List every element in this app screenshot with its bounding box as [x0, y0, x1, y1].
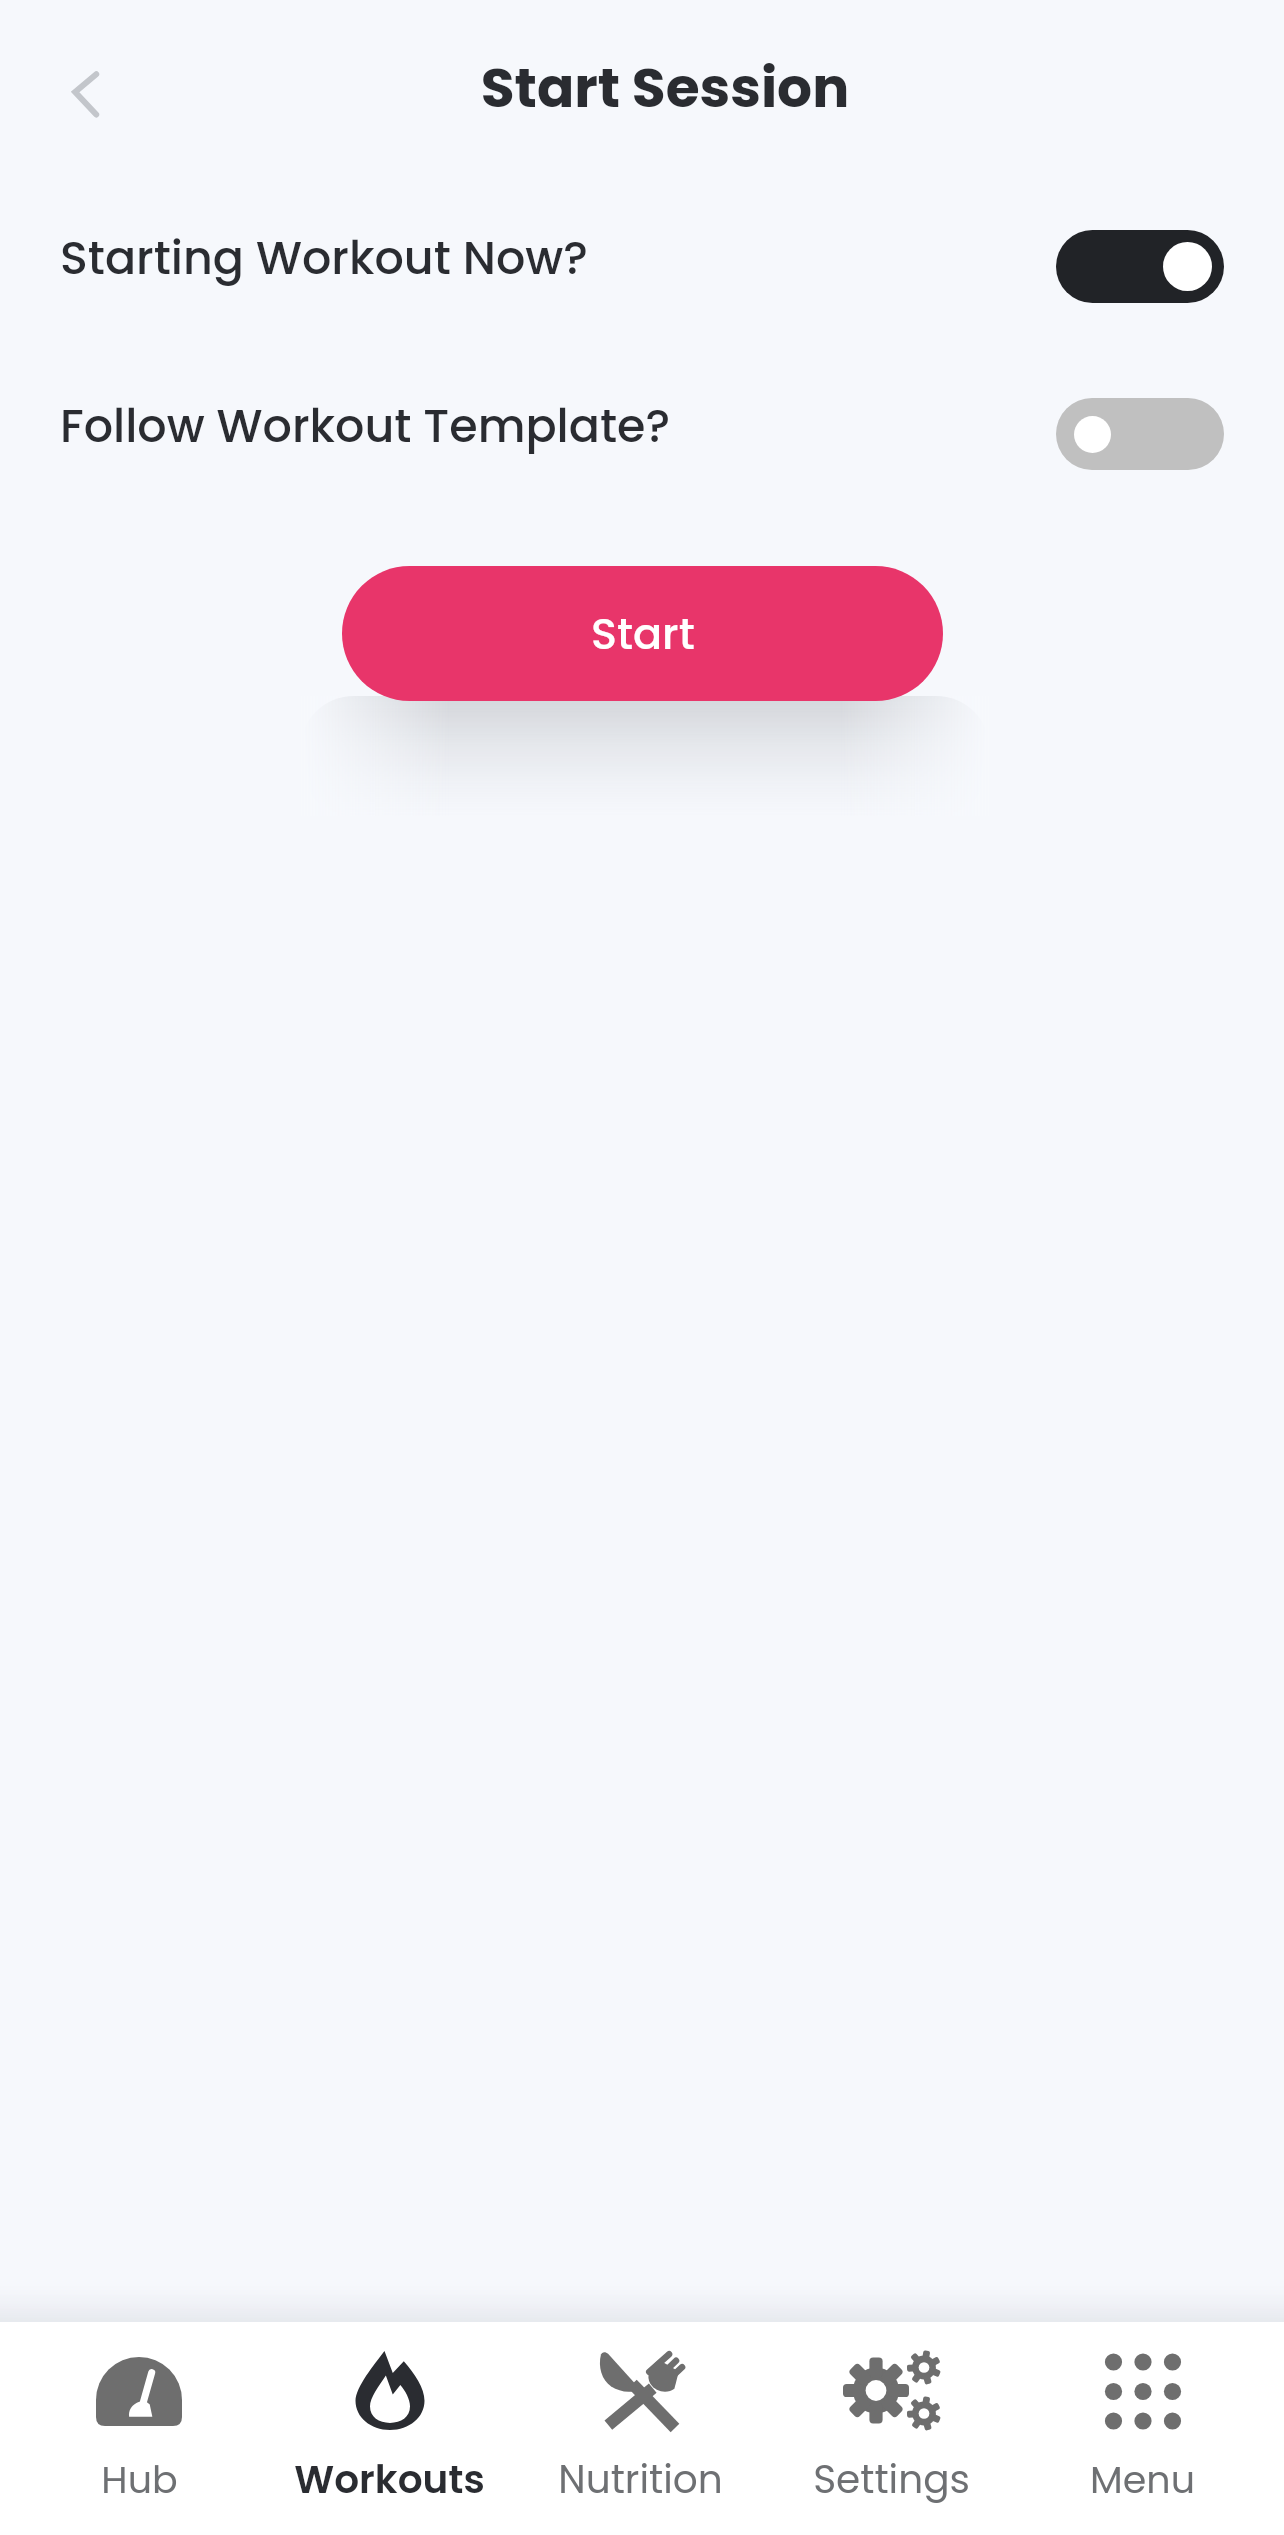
button[interactable]: Starting Workout Now? [0, 216, 1284, 316]
staticText: Follow Workout Template? [60, 394, 671, 458]
button[interactable]: Menu [1017, 2322, 1268, 2535]
button[interactable]: Back [42, 44, 138, 140]
button[interactable]: Hub [14, 2322, 264, 2535]
button[interactable]: Follow Workout Template? [0, 384, 1284, 484]
button[interactable]: Start [342, 566, 943, 701]
button[interactable]: Settings [766, 2322, 1017, 2535]
staticText: Starting Workout Now? [60, 226, 588, 290]
staticText: Start [591, 604, 695, 664]
button[interactable]: Workouts [264, 2322, 515, 2535]
staticText: Settings [813, 2452, 970, 2507]
staticText: Hub [101, 2453, 178, 2506]
staticText: Workouts [294, 2452, 485, 2507]
button[interactable]: Nutrition [515, 2322, 766, 2535]
staticText: Menu [1090, 2453, 1195, 2506]
staticText: Nutrition [558, 2452, 723, 2507]
staticText: Start Session [23, 49, 1284, 126]
